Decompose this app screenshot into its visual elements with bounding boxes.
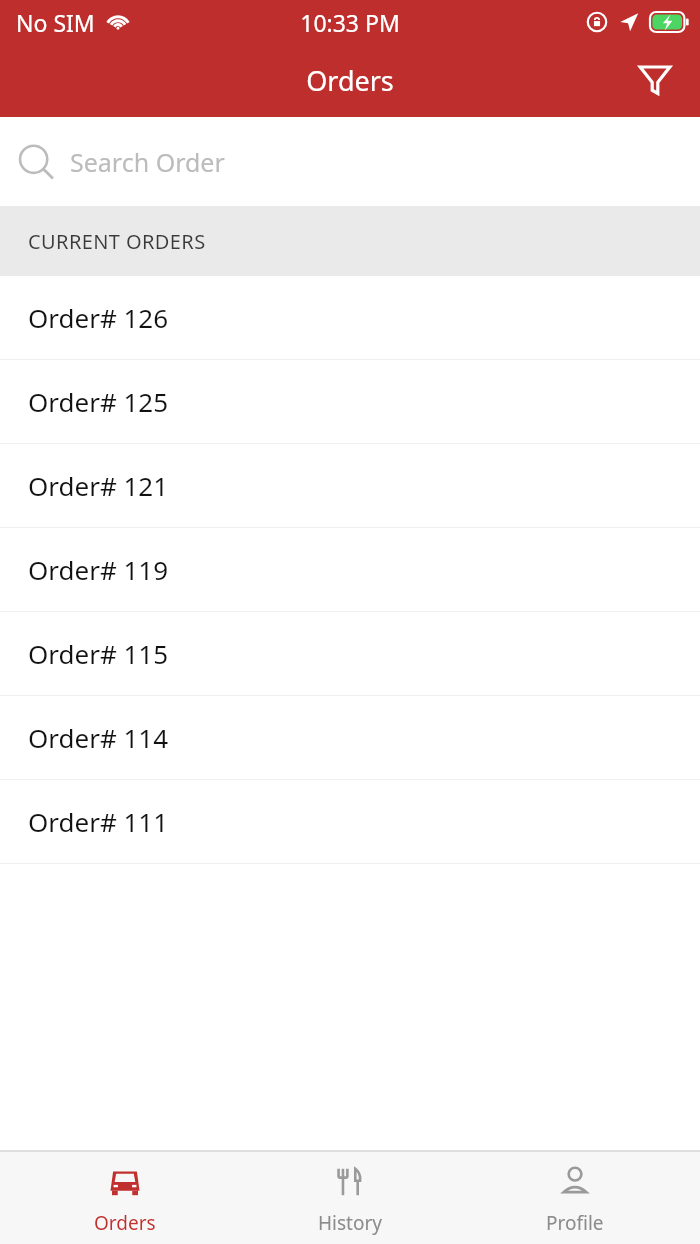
button[interactable]: Profile bbox=[475, 1151, 675, 1244]
staticText: No SIM bbox=[16, 7, 95, 38]
button[interactable]: Order# 125 bbox=[0, 360, 700, 444]
button[interactable]: Order# 121 bbox=[0, 444, 700, 528]
staticText: Search Order bbox=[70, 145, 225, 179]
button[interactable]: Search Order bbox=[0, 117, 700, 206]
staticText: Order# 121 bbox=[28, 468, 169, 503]
staticText: Order# 125 bbox=[28, 384, 169, 419]
staticText: Order# 126 bbox=[28, 300, 169, 335]
staticText: CURRENT ORDERS bbox=[28, 228, 206, 255]
staticText: Profile bbox=[546, 1210, 604, 1236]
button[interactable]: Filter bbox=[624, 48, 686, 110]
staticText: Orders bbox=[94, 1210, 156, 1236]
staticText: Order# 111 bbox=[28, 804, 169, 839]
staticText: 10:33 PM bbox=[0, 7, 700, 38]
button[interactable]: Order# 115 bbox=[0, 612, 700, 696]
staticText: Order# 114 bbox=[28, 720, 169, 755]
staticText: Order# 119 bbox=[28, 552, 169, 587]
button[interactable]: Order# 114 bbox=[0, 696, 700, 780]
staticText: History bbox=[318, 1210, 382, 1236]
button[interactable]: History bbox=[250, 1151, 450, 1244]
button[interactable]: Order# 119 bbox=[0, 528, 700, 612]
button[interactable]: Orders bbox=[25, 1151, 225, 1244]
staticText: Orders bbox=[0, 62, 700, 99]
button[interactable]: Order# 111 bbox=[0, 780, 700, 864]
staticText: Order# 115 bbox=[28, 636, 169, 671]
button[interactable]: Order# 126 bbox=[0, 276, 700, 360]
